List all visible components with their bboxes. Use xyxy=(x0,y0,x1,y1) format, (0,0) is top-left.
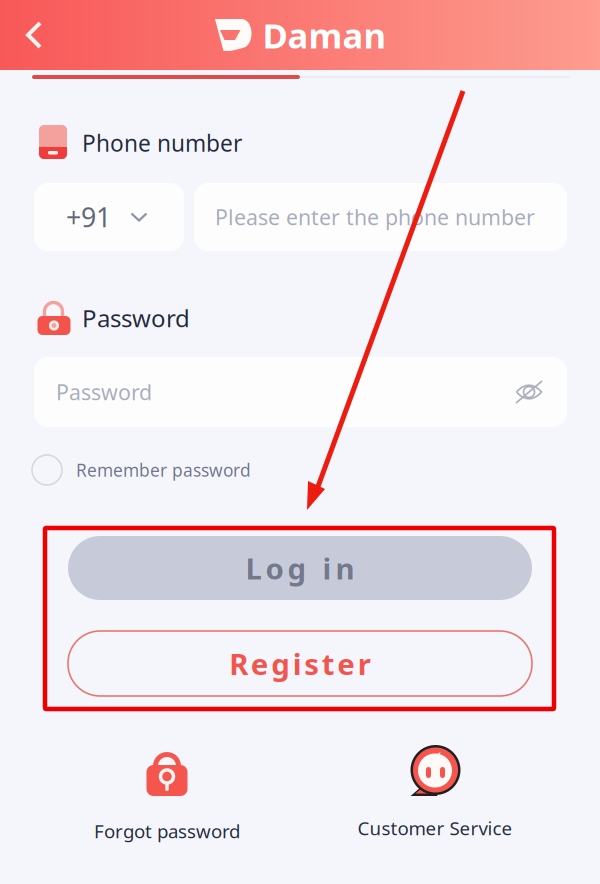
button[interactable]: Forgot password xyxy=(67,748,267,841)
button[interactable]: Register xyxy=(68,631,532,696)
staticText: Phone number xyxy=(82,128,242,158)
staticText: Forgot password xyxy=(94,819,240,843)
staticText: Register xyxy=(229,644,371,683)
staticText: Password xyxy=(56,378,152,406)
button[interactable]: Password xyxy=(34,357,567,427)
button[interactable]: Back xyxy=(12,12,58,58)
button[interactable]: Log in xyxy=(68,536,532,600)
staticText: +91 xyxy=(66,199,111,235)
button[interactable]: Customer Service xyxy=(335,745,535,838)
staticText: Daman xyxy=(262,12,386,58)
button[interactable]: +91 xyxy=(34,183,184,251)
staticText: Password xyxy=(82,302,190,334)
staticText: Remember password xyxy=(76,458,251,481)
button[interactable]: Please enter the phone number xyxy=(194,183,567,251)
staticText: Customer Service xyxy=(357,816,512,840)
button[interactable]: Remember password xyxy=(32,455,251,485)
staticText: Please enter the phone number xyxy=(215,203,535,231)
staticText: Log in xyxy=(245,548,354,587)
